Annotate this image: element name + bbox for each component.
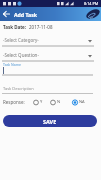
- staticText: Response:: [3, 99, 25, 105]
- button[interactable]: N: [49, 97, 63, 108]
- staticText: 2017-11-08: [29, 24, 53, 30]
- staticText: Task Name: [3, 62, 21, 67]
- button[interactable]: [85, 7, 101, 21]
- button[interactable]: -Select Category-: [0, 35, 96, 47]
- staticText: -Select Question-: [3, 52, 39, 58]
- staticText: 8:14 PM: [84, 1, 99, 6]
- button[interactable]: Task Name: [0, 62, 96, 76]
- staticText: N: [57, 99, 61, 104]
- staticText: -Select Category-: [3, 37, 39, 43]
- button[interactable]: NA: [70, 97, 88, 108]
- staticText: NA: [79, 99, 85, 104]
- button[interactable]: [0, 8, 12, 20]
- button[interactable]: Task Description: [0, 85, 96, 95]
- staticText: SAVE: [43, 118, 57, 125]
- staticText: Task Date:: [3, 24, 29, 30]
- staticText: Y: [40, 99, 43, 104]
- button[interactable]: -Select Question-: [0, 50, 96, 62]
- button[interactable]: Y: [32, 97, 46, 108]
- staticText: Task Description: [3, 86, 34, 91]
- staticText: Add Task: [14, 11, 38, 18]
- button[interactable]: SAVE: [3, 115, 97, 127]
